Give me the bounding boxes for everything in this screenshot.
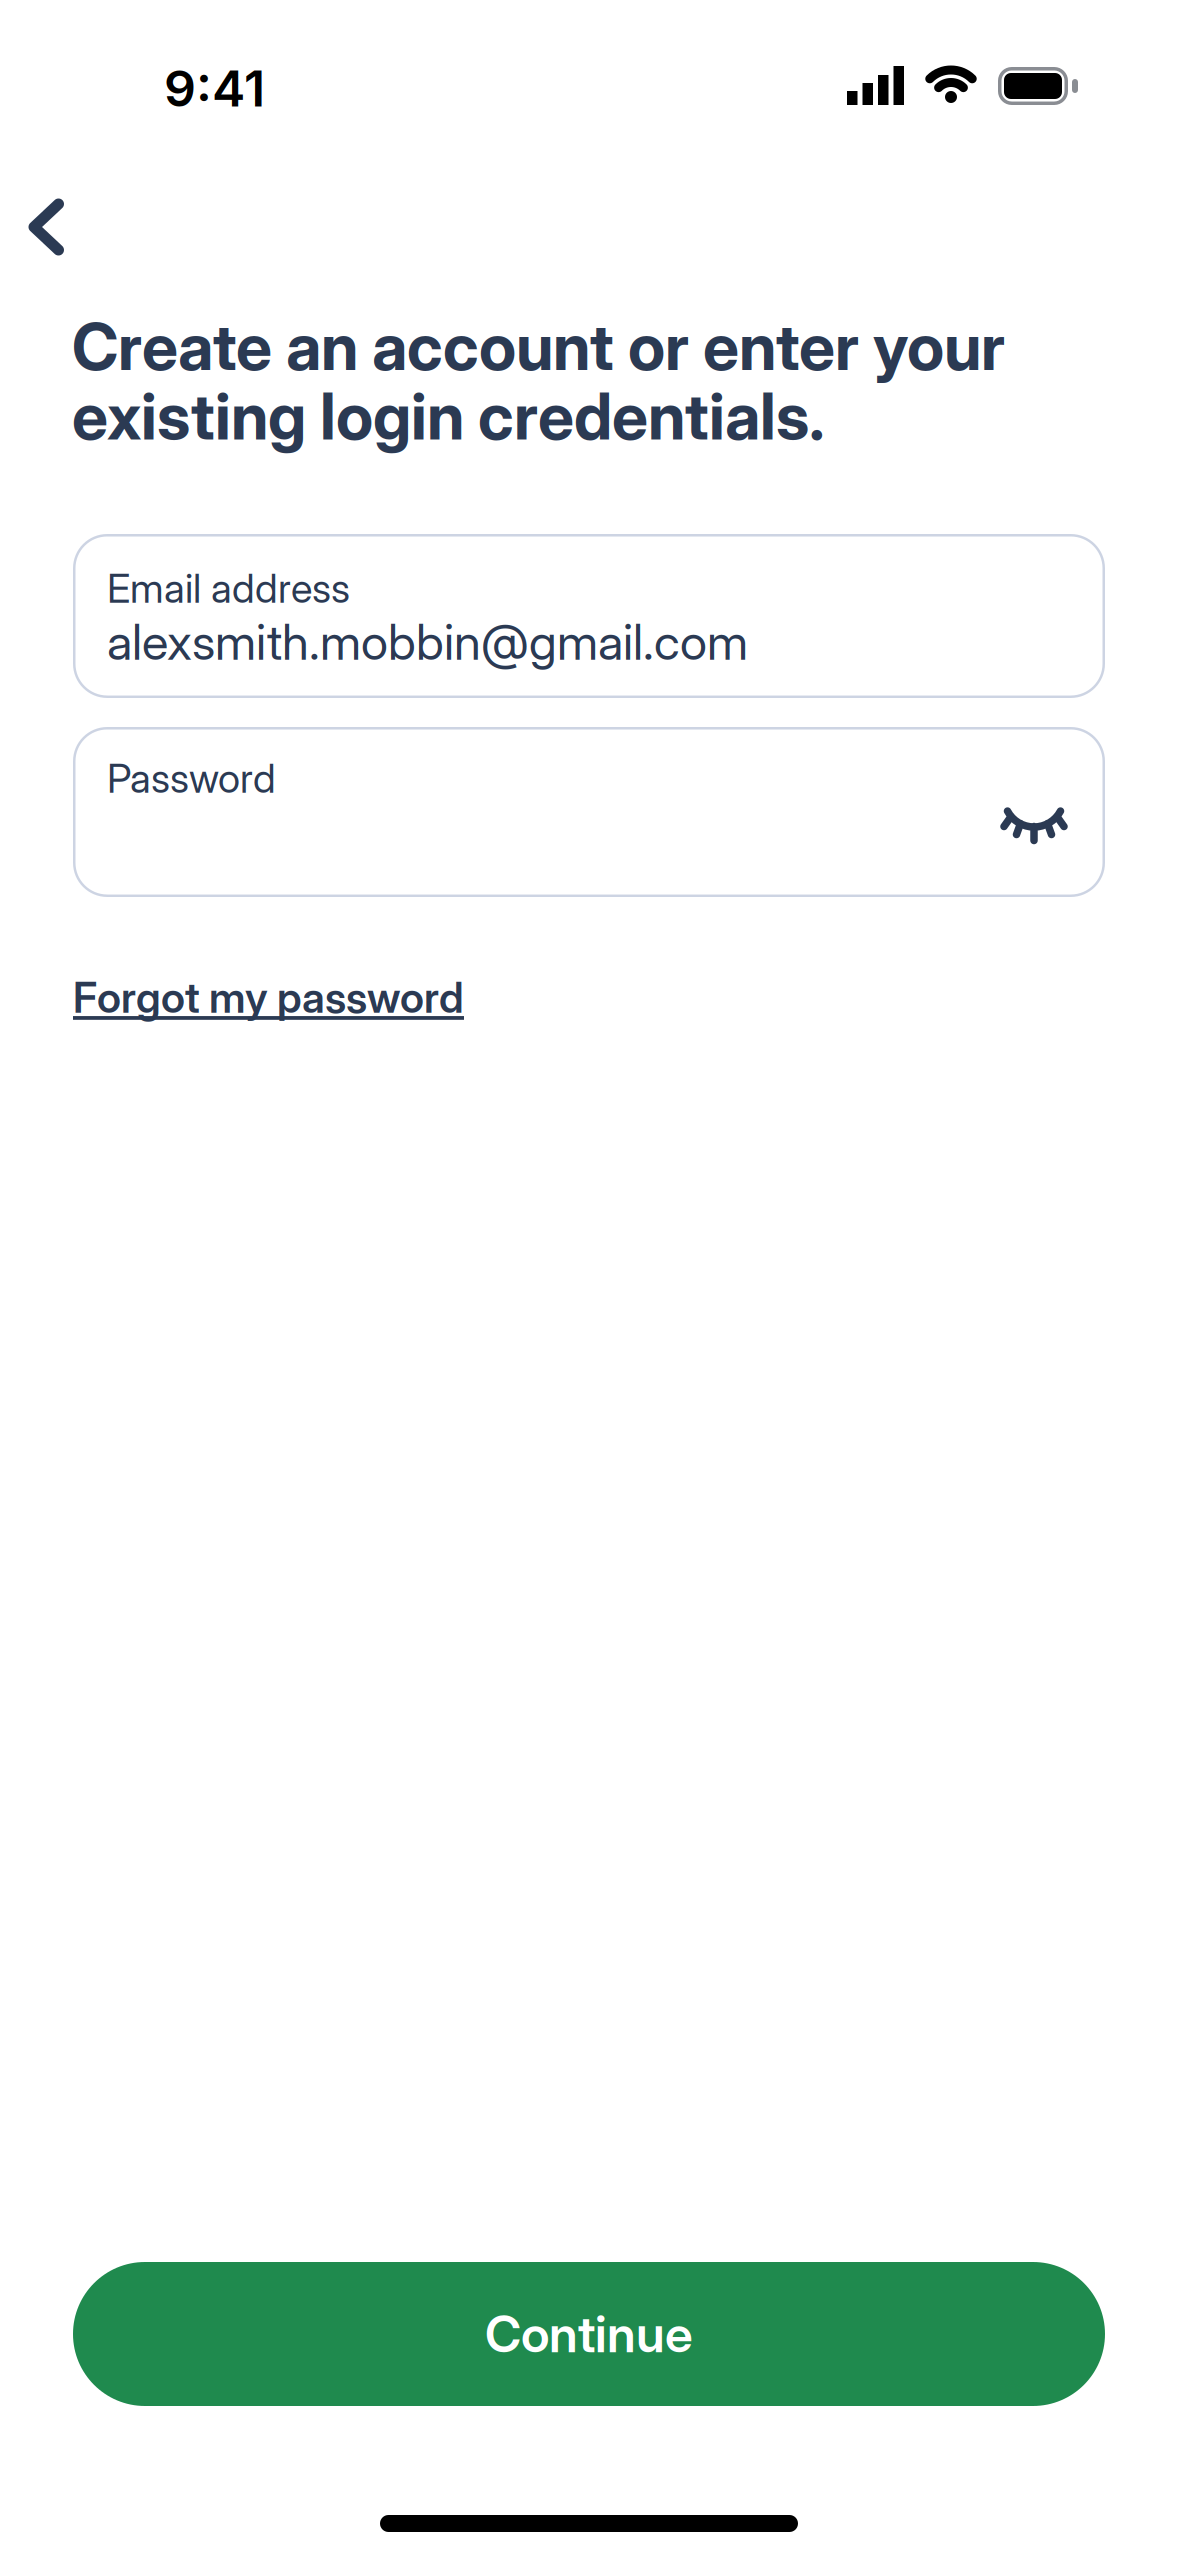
button[interactable]: Email address: [73, 534, 1105, 698]
staticText: Create an account or enter your: [72, 308, 1005, 385]
button[interactable]: Show password: [994, 789, 1074, 849]
button[interactable]: Continue: [73, 2262, 1105, 2406]
staticText: Continue: [485, 2304, 693, 2364]
button[interactable]: Password: [73, 727, 1105, 897]
staticText: Email address: [107, 564, 350, 612]
staticText: Forgot my password: [73, 972, 464, 1023]
staticText: 9:41: [164, 58, 265, 118]
staticText: Password: [107, 754, 276, 802]
staticText: existing login credentials.: [72, 377, 825, 455]
staticText: alexsmith.mobbin@gmail.com: [107, 612, 748, 672]
button[interactable]: Back: [34, 204, 70, 261]
button[interactable]: Forgot my password: [73, 972, 464, 1023]
